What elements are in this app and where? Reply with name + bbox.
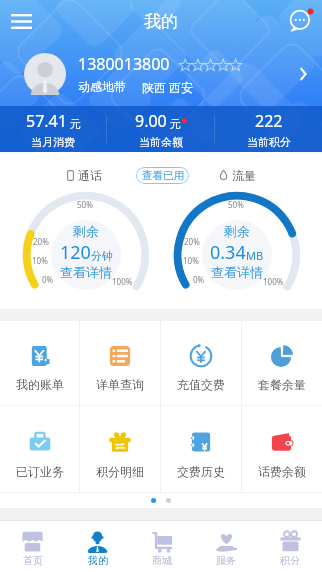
- staticText: 222: [255, 110, 283, 132]
- staticText: 20%: [184, 236, 200, 247]
- staticText: 当前积分: [247, 135, 291, 149]
- staticText: 57.41: [26, 110, 67, 132]
- button[interactable]: 商城: [130, 521, 194, 572]
- staticText: 详单查询: [96, 377, 144, 392]
- button[interactable]: 50%: [161, 179, 313, 331]
- button[interactable]: 首页: [0, 521, 65, 572]
- staticText: 元: [170, 117, 181, 131]
- staticText: 交费历史: [177, 464, 225, 479]
- button[interactable]: 50%: [10, 179, 162, 331]
- staticText: 套餐余量: [258, 377, 306, 392]
- staticText: 服务: [216, 554, 236, 567]
- staticText: 我的账单: [16, 377, 64, 392]
- staticText: 1380013800: [78, 53, 170, 75]
- staticText: 剩余: [73, 223, 99, 239]
- staticText: 元: [70, 117, 81, 131]
- staticText: 100%: [263, 276, 284, 287]
- button[interactable]: 服务: [194, 521, 258, 572]
- staticText: 9.00: [135, 110, 167, 132]
- staticText: 当前余额: [139, 135, 183, 149]
- button[interactable]: 222: [215, 106, 322, 152]
- button[interactable]: 57.41: [0, 106, 106, 152]
- staticText: 陕西 西安: [142, 79, 194, 95]
- staticText: 分钟: [91, 249, 113, 263]
- staticText: 积分明细: [96, 464, 144, 479]
- staticText: 已订业务: [16, 464, 64, 479]
- button[interactable]: Messages: [280, 0, 322, 42]
- staticText: 10%: [32, 255, 48, 266]
- staticText: 120: [60, 240, 91, 265]
- staticText: 当月消费: [31, 135, 75, 149]
- staticText: 话费余额: [258, 464, 306, 479]
- staticText: 查看详情: [211, 264, 263, 280]
- staticText: 0%: [193, 274, 205, 285]
- staticText: 0.34: [210, 240, 246, 265]
- staticText: 10%: [183, 255, 199, 266]
- button[interactable]: 详单查询: [80, 321, 160, 405]
- button[interactable]: 我的账单: [0, 321, 79, 405]
- staticText: 100%: [112, 276, 133, 287]
- staticText: 20%: [33, 236, 49, 247]
- staticText: 积分: [280, 554, 300, 567]
- button[interactable]: Menu: [0, 0, 42, 42]
- staticText: 通话: [78, 168, 102, 183]
- button[interactable]: 积分: [258, 521, 322, 572]
- button[interactable]: 通话: [67, 163, 102, 187]
- staticText: 0%: [42, 274, 54, 285]
- staticText: 我的: [144, 11, 178, 32]
- button[interactable]: 充值交费: [161, 321, 241, 405]
- button[interactable]: 交费历史: [161, 406, 241, 492]
- staticText: 充值交费: [177, 377, 225, 392]
- staticText: 我的: [88, 554, 108, 567]
- button[interactable]: 积分明细: [80, 406, 160, 492]
- button[interactable]: 查看已用: [136, 167, 189, 184]
- staticText: 商城: [152, 554, 172, 567]
- staticText: MB: [246, 248, 264, 263]
- button[interactable]: 话费余额: [242, 406, 322, 492]
- staticText: 流量: [232, 168, 256, 183]
- staticText: 50%: [77, 199, 93, 210]
- button[interactable]: 流量: [219, 163, 256, 187]
- staticText: 50%: [228, 199, 244, 210]
- button[interactable]: 套餐余量: [242, 321, 322, 405]
- staticText: 首页: [23, 554, 43, 567]
- button[interactable]: 1380013800: [0, 42, 322, 106]
- button[interactable]: 已订业务: [0, 406, 79, 492]
- staticText: 动感地带: [78, 79, 126, 94]
- button[interactable]: 9.00: [107, 106, 214, 152]
- staticText: 查看已用: [142, 169, 184, 182]
- staticText: 剩余: [224, 223, 250, 239]
- button[interactable]: 我的: [65, 521, 130, 572]
- staticText: 查看详情: [60, 264, 112, 280]
